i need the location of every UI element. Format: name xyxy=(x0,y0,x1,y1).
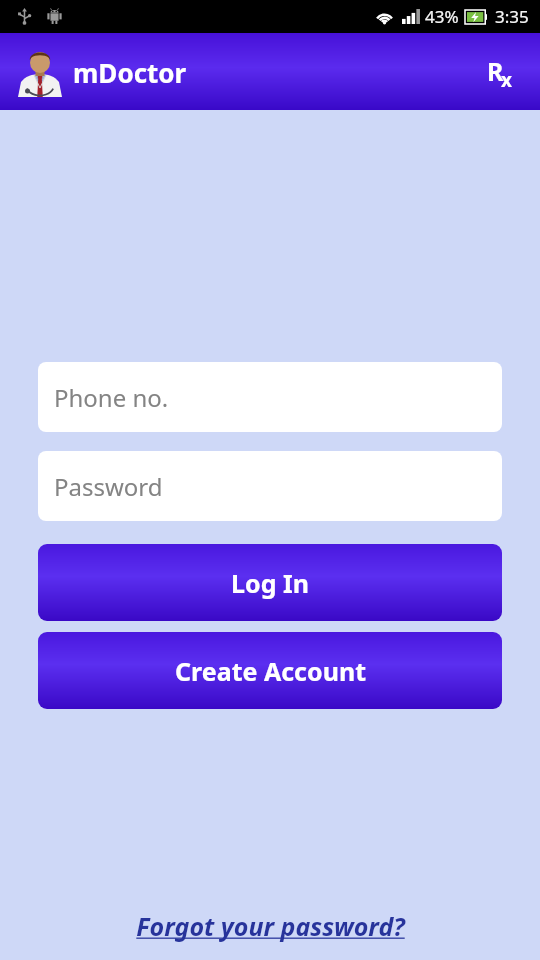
button[interactable]: Log In xyxy=(38,544,502,621)
staticText: Phone no. xyxy=(54,381,169,414)
staticText: R xyxy=(487,54,504,88)
staticText: Create Account xyxy=(175,654,366,688)
button[interactable]: Password xyxy=(38,451,502,521)
button[interactable]: Phone no. xyxy=(38,362,502,432)
staticText: x xyxy=(501,67,512,93)
button[interactable]: Create Account xyxy=(38,632,502,709)
staticText: 43% xyxy=(425,5,459,28)
staticText: mDoctor xyxy=(73,55,187,90)
button[interactable]: Prescriptions xyxy=(478,46,530,98)
staticText: Password xyxy=(54,470,163,503)
staticText: Forgot your password? xyxy=(136,909,405,943)
staticText: 3:35 xyxy=(495,5,529,28)
button[interactable]: Forgot your password? xyxy=(0,909,540,943)
staticText: Log In xyxy=(231,566,309,600)
